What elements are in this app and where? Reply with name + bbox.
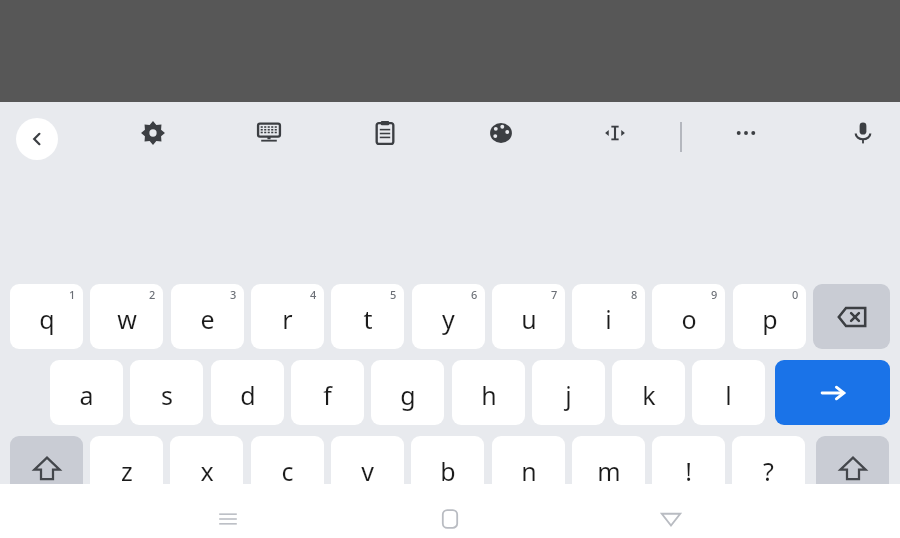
button[interactable]: e: [171, 284, 244, 349]
staticText: i: [605, 302, 612, 336]
staticText: x: [200, 454, 214, 488]
staticText: e: [200, 302, 215, 336]
button[interactable]: i: [572, 284, 645, 349]
button[interactable]: o: [652, 284, 725, 349]
staticText: 4: [310, 287, 317, 302]
button[interactable]: t: [331, 284, 404, 349]
button[interactable]: x: [170, 436, 243, 501]
staticText: v: [361, 454, 374, 488]
staticText: n: [521, 454, 537, 488]
button[interactable]: c: [251, 436, 324, 501]
staticText: p: [762, 302, 778, 336]
button[interactable]: p: [733, 284, 806, 349]
button[interactable]: a: [50, 360, 123, 425]
button[interactable]: k: [612, 360, 685, 425]
staticText: c: [281, 454, 294, 488]
staticText: 6: [471, 287, 478, 302]
button[interactable]: .com: [655, 512, 728, 538]
button[interactable]: Home: [427, 496, 473, 538]
button[interactable]: b: [411, 436, 484, 501]
staticText: q: [39, 302, 55, 336]
staticText: l: [725, 378, 732, 412]
button[interactable]: m: [572, 436, 645, 501]
button[interactable]: h: [452, 360, 525, 425]
staticText: !: [685, 454, 692, 488]
staticText: 0: [792, 287, 799, 302]
button[interactable]: j: [532, 360, 605, 425]
staticText: 2: [149, 287, 156, 302]
staticText: 3: [230, 287, 237, 302]
button[interactable]: r: [251, 284, 324, 349]
staticText: t: [363, 302, 373, 336]
button[interactable]: s: [130, 360, 203, 425]
staticText: 1: [69, 287, 76, 302]
staticText: f: [323, 378, 332, 412]
button[interactable]: Keyboard layout: [254, 118, 284, 148]
button[interactable]: d: [211, 360, 284, 425]
button[interactable]: Voice input: [848, 118, 878, 148]
staticText: s: [161, 378, 173, 412]
staticText: m: [597, 454, 621, 488]
staticText: g: [400, 378, 416, 412]
staticText: z: [121, 454, 133, 488]
button[interactable]: Text editing: [600, 118, 630, 148]
staticText: j: [565, 378, 572, 412]
button[interactable]: Shift: [816, 436, 889, 501]
button[interactable]: z: [90, 436, 163, 501]
button[interactable]: Backspace: [813, 284, 890, 349]
button[interactable]: Back: [648, 496, 694, 538]
staticText: d: [240, 378, 256, 412]
staticText: 5: [390, 287, 397, 302]
staticText: 7: [551, 287, 558, 302]
staticText: a: [79, 378, 94, 412]
button[interactable]: Theme: [486, 118, 516, 148]
button[interactable]: Clipboard: [370, 118, 400, 148]
staticText: b: [440, 454, 456, 488]
button[interactable]: !: [652, 436, 725, 501]
button[interactable]: More options: [731, 118, 761, 148]
staticText: ?: [763, 454, 774, 488]
button[interactable]: Space: [170, 512, 647, 538]
button[interactable]: ?: [732, 436, 805, 501]
staticText: k: [642, 378, 656, 412]
button[interactable]: g: [371, 360, 444, 425]
button[interactable]: q: [10, 284, 83, 349]
staticText: 9: [711, 287, 718, 302]
staticText: h: [481, 378, 497, 412]
button[interactable]: Shift: [10, 436, 83, 501]
staticText: u: [521, 302, 537, 336]
button[interactable]: Settings: [138, 118, 168, 148]
staticText: w: [117, 302, 137, 336]
button[interactable]: l: [692, 360, 765, 425]
staticText: r: [282, 302, 293, 336]
button[interactable]: Enter: [775, 360, 890, 425]
button[interactable]: n: [492, 436, 565, 501]
button[interactable]: u: [492, 284, 565, 349]
button[interactable]: Back: [16, 118, 58, 160]
button[interactable]: y: [412, 284, 485, 349]
button[interactable]: f: [291, 360, 364, 425]
staticText: 8: [631, 287, 638, 302]
staticText: o: [681, 302, 697, 336]
button[interactable]: v: [331, 436, 404, 501]
button[interactable]: w: [90, 284, 163, 349]
staticText: y: [442, 302, 455, 336]
button[interactable]: Recents: [205, 496, 251, 538]
